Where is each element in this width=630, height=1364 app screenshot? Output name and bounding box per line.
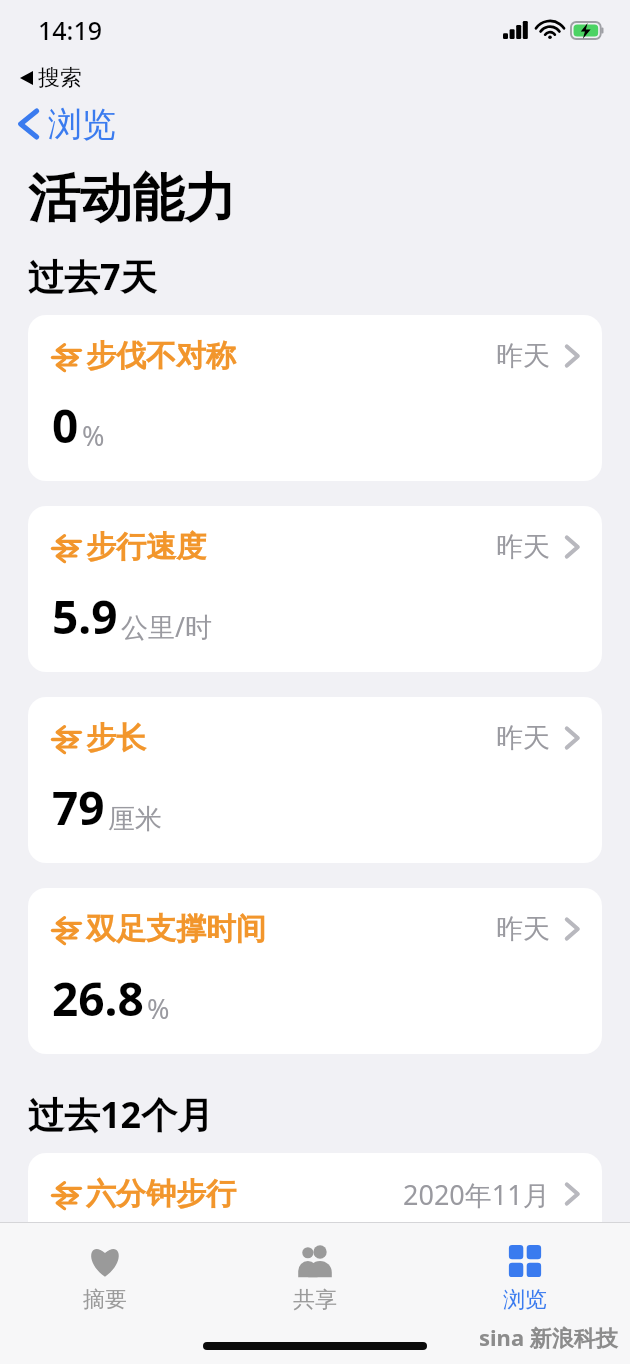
button[interactable]: 六分钟步行 (28, 1153, 602, 1253)
staticText: 过去12个月 (28, 1090, 214, 1139)
staticText: 共享 (293, 1286, 337, 1314)
staticText: 昨天 (496, 721, 550, 755)
staticText: 活动能力 (28, 166, 236, 232)
button[interactable]: 步伐不对称 (28, 315, 602, 481)
staticText: 步长 (86, 719, 146, 757)
staticText: 公里/时 (121, 608, 213, 645)
button[interactable]: 步行速度 (28, 506, 602, 672)
staticText: 26.8 (52, 967, 144, 1030)
staticText: 昨天 (496, 530, 550, 564)
other: 摘要 (84, 1243, 126, 1279)
other: 浏览 (504, 1243, 546, 1279)
staticText: 浏览 (503, 1286, 547, 1314)
button[interactable]: 浏览 (420, 1239, 630, 1318)
staticText: 5.9 (52, 585, 118, 648)
staticText: 厘米 (108, 802, 162, 836)
staticText: 14:19 (38, 13, 103, 47)
staticText: % (82, 417, 105, 454)
button[interactable]: 双足支撑时间 (28, 888, 602, 1054)
staticText: 0 (52, 394, 79, 457)
staticText: 步行速度 (86, 528, 206, 566)
staticText: 六分钟步行 (86, 1175, 236, 1213)
staticText: 搜索 (38, 64, 82, 92)
staticText: 昨天 (496, 912, 550, 946)
staticText: 过去7天 (28, 252, 157, 301)
button[interactable]: 浏览 (0, 96, 130, 152)
button[interactable]: 共享 (210, 1239, 420, 1318)
staticText: 2020年11月 (403, 1176, 550, 1213)
staticText: 步伐不对称 (86, 337, 236, 375)
button[interactable]: 摘要 (0, 1239, 210, 1318)
button[interactable]: 步长 (28, 697, 602, 863)
staticText: sina 新浪科技 (479, 1322, 618, 1352)
other: 共享 (294, 1243, 336, 1279)
button[interactable]: 搜索 (0, 60, 630, 96)
staticText: % (147, 990, 170, 1027)
staticText: 摘要 (83, 1286, 127, 1314)
staticText: 昨天 (496, 339, 550, 373)
staticText: 79 (52, 776, 105, 839)
staticText: 浏览 (48, 103, 116, 146)
staticText: 双足支撑时间 (86, 910, 266, 948)
